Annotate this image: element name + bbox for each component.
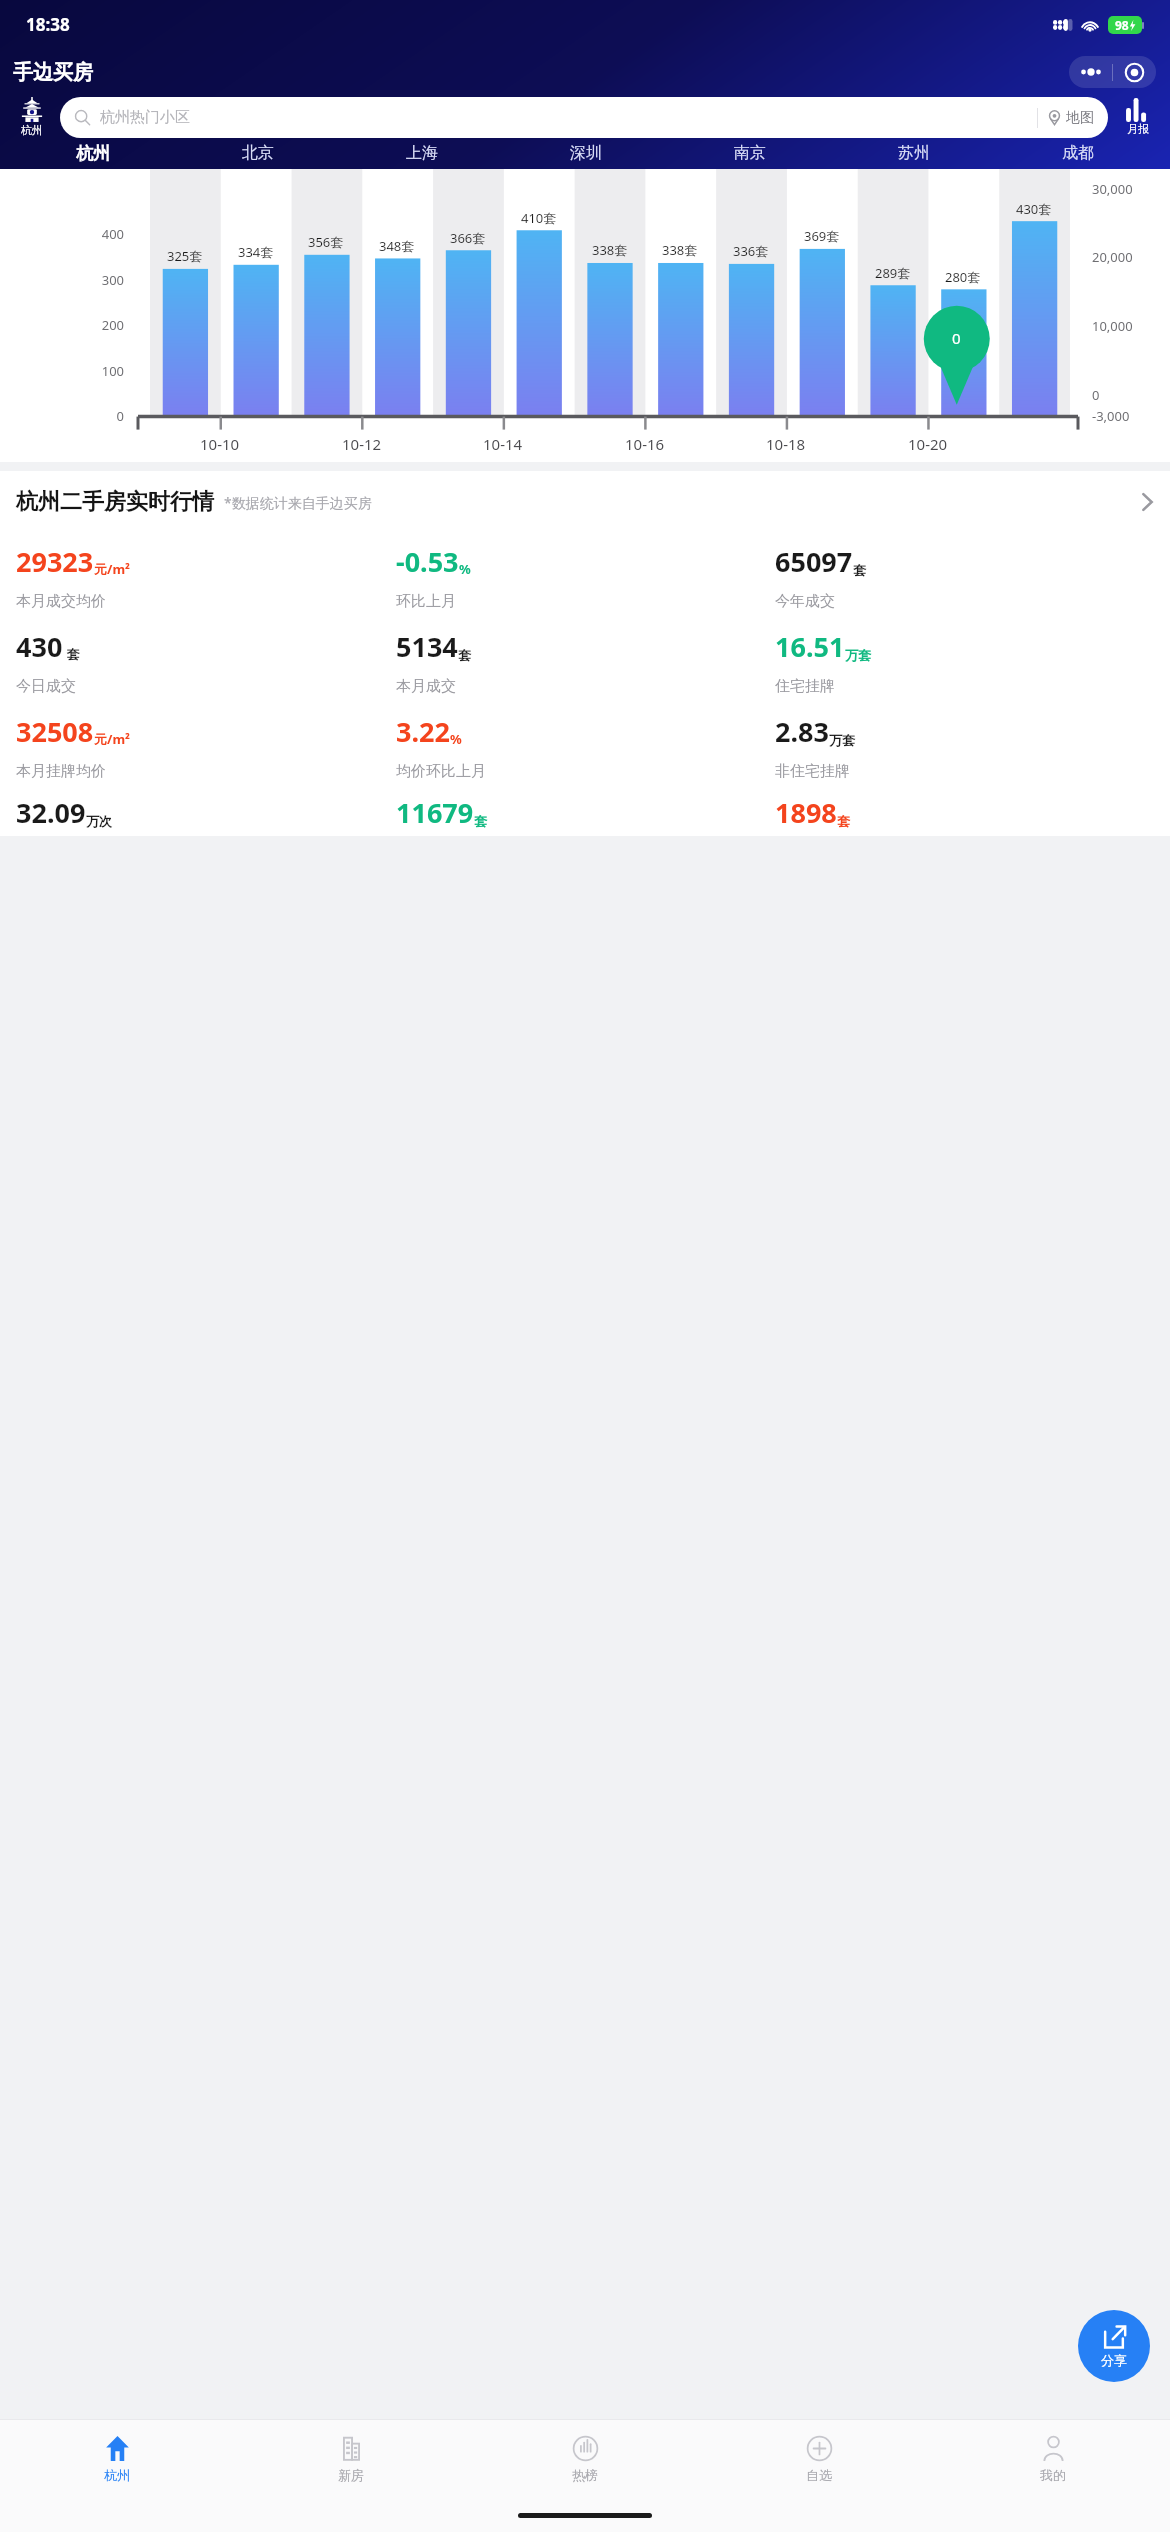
button[interactable]: 杭州 bbox=[0, 2420, 234, 2498]
staticText: 366套 bbox=[450, 229, 486, 247]
staticText: 11679 bbox=[396, 794, 474, 831]
staticText: 杭州二手房实时行情 bbox=[16, 488, 214, 516]
staticText: 5134 bbox=[396, 628, 458, 665]
button[interactable]: 29323 bbox=[16, 533, 396, 618]
staticText: 套 bbox=[63, 645, 80, 663]
button[interactable]: 32.09 bbox=[16, 788, 396, 836]
button[interactable]: 11679 bbox=[396, 788, 775, 836]
button[interactable]: Close bbox=[1113, 56, 1156, 88]
staticText: 65097 bbox=[775, 543, 853, 580]
staticText: 万次 bbox=[86, 813, 112, 829]
staticText: 18:38 bbox=[26, 13, 70, 36]
button[interactable]: 2.83 bbox=[775, 703, 1154, 788]
staticText: 苏州 bbox=[898, 143, 930, 163]
staticText: 334套 bbox=[238, 243, 274, 261]
button[interactable]: 南京 bbox=[668, 137, 832, 169]
staticText: 套 bbox=[837, 813, 850, 829]
button[interactable]: 杭州热门小区 bbox=[60, 97, 1108, 138]
button[interactable]: 深圳 bbox=[504, 137, 668, 169]
button[interactable]: -0.53 bbox=[396, 533, 775, 618]
staticText: 98 bbox=[1115, 17, 1129, 33]
staticText: 325套 bbox=[167, 247, 203, 265]
staticText: -0.53 bbox=[396, 543, 459, 580]
staticText: 成都 bbox=[1062, 143, 1094, 163]
button[interactable]: 32508 bbox=[16, 703, 396, 788]
staticText: 356套 bbox=[308, 233, 344, 251]
button[interactable]: 杭州 bbox=[10, 97, 54, 137]
button[interactable]: More bbox=[1069, 56, 1112, 88]
staticText: 均价环比上月 bbox=[396, 762, 486, 781]
staticText: 套 bbox=[853, 562, 866, 578]
staticText: 杭州 bbox=[21, 123, 43, 137]
staticText: 0 bbox=[1092, 386, 1100, 404]
staticText: 10,000 bbox=[1092, 317, 1133, 335]
staticText: 10-10 bbox=[200, 434, 240, 454]
staticText: 430套 bbox=[1016, 200, 1052, 218]
button[interactable]: 月报 bbox=[1116, 98, 1160, 136]
button[interactable]: 杭州二手房实时行情 bbox=[0, 471, 1170, 533]
staticText: 手边买房 bbox=[13, 60, 93, 85]
staticText: 我的 bbox=[1040, 2467, 1066, 2483]
staticText: 地图 bbox=[1066, 109, 1094, 127]
staticText: 本月挂牌均价 bbox=[16, 762, 106, 781]
staticText: 环比上月 bbox=[396, 592, 456, 611]
staticText: 杭州 bbox=[104, 2467, 130, 2483]
button[interactable]: 3.22 bbox=[396, 703, 775, 788]
staticText: 10-14 bbox=[483, 434, 523, 454]
staticText: 本月成交均价 bbox=[16, 592, 106, 611]
staticText: 336套 bbox=[733, 242, 769, 260]
staticText: 杭州 bbox=[76, 143, 110, 164]
staticText: 0 bbox=[116, 407, 124, 425]
staticText: 上海 bbox=[406, 143, 438, 163]
staticText: 今年成交 bbox=[775, 592, 835, 611]
staticText: 0 bbox=[952, 328, 961, 348]
staticText: 北京 bbox=[242, 143, 274, 163]
staticText: 280套 bbox=[945, 268, 981, 286]
staticText: 338套 bbox=[592, 241, 628, 259]
button[interactable]: 1898 bbox=[775, 788, 1154, 836]
staticText: 万套 bbox=[845, 647, 871, 663]
staticText: 32.09 bbox=[16, 794, 86, 831]
staticText: 400 bbox=[101, 225, 124, 243]
button[interactable]: 上海 bbox=[340, 137, 504, 169]
button[interactable]: 5134 bbox=[396, 618, 775, 703]
staticText: 3.22 bbox=[396, 713, 450, 750]
button[interactable]: 16.51 bbox=[775, 618, 1154, 703]
staticText: 289套 bbox=[875, 264, 911, 282]
staticText: 热榜 bbox=[572, 2467, 598, 2483]
button[interactable]: 苏州 bbox=[832, 137, 996, 169]
button[interactable]: 分享 bbox=[1078, 2310, 1150, 2382]
staticText: 自选 bbox=[806, 2467, 832, 2483]
button[interactable]: 北京 bbox=[175, 137, 340, 169]
button[interactable]: 新房 bbox=[234, 2420, 468, 2498]
staticText: 新房 bbox=[338, 2467, 364, 2483]
staticText: 10-20 bbox=[908, 434, 948, 454]
staticText: 410套 bbox=[521, 209, 557, 227]
staticText: 100 bbox=[101, 362, 124, 380]
button[interactable]: 杭州 bbox=[10, 137, 175, 169]
button[interactable]: 成都 bbox=[996, 137, 1160, 169]
staticText: 非住宅挂牌 bbox=[775, 762, 850, 781]
staticText: 16.51 bbox=[775, 628, 845, 665]
staticText: 338套 bbox=[662, 241, 698, 259]
button[interactable]: 热榜 bbox=[468, 2420, 702, 2498]
staticText: 杭州热门小区 bbox=[100, 108, 190, 127]
button[interactable]: 自选 bbox=[702, 2420, 936, 2498]
staticText: 10-12 bbox=[342, 434, 382, 454]
staticText: 29323 bbox=[16, 543, 94, 580]
button[interactable]: 65097 bbox=[775, 533, 1154, 618]
staticText: 住宅挂牌 bbox=[775, 677, 835, 696]
staticText: *数据统计来自手边买房 bbox=[224, 493, 372, 512]
staticText: 月报 bbox=[1127, 122, 1149, 136]
staticText: 元/m² bbox=[94, 560, 130, 578]
staticText: % bbox=[450, 730, 462, 748]
staticText: -3,000 bbox=[1092, 407, 1130, 425]
staticText: 今日成交 bbox=[16, 677, 76, 696]
button[interactable]: 我的 bbox=[936, 2420, 1170, 2498]
staticText: 万套 bbox=[829, 732, 855, 748]
staticText: % bbox=[459, 560, 471, 578]
button[interactable]: 430 bbox=[16, 618, 396, 703]
staticText: 369套 bbox=[804, 227, 840, 245]
staticText: 10-18 bbox=[766, 434, 806, 454]
staticText: 10-16 bbox=[625, 434, 665, 454]
